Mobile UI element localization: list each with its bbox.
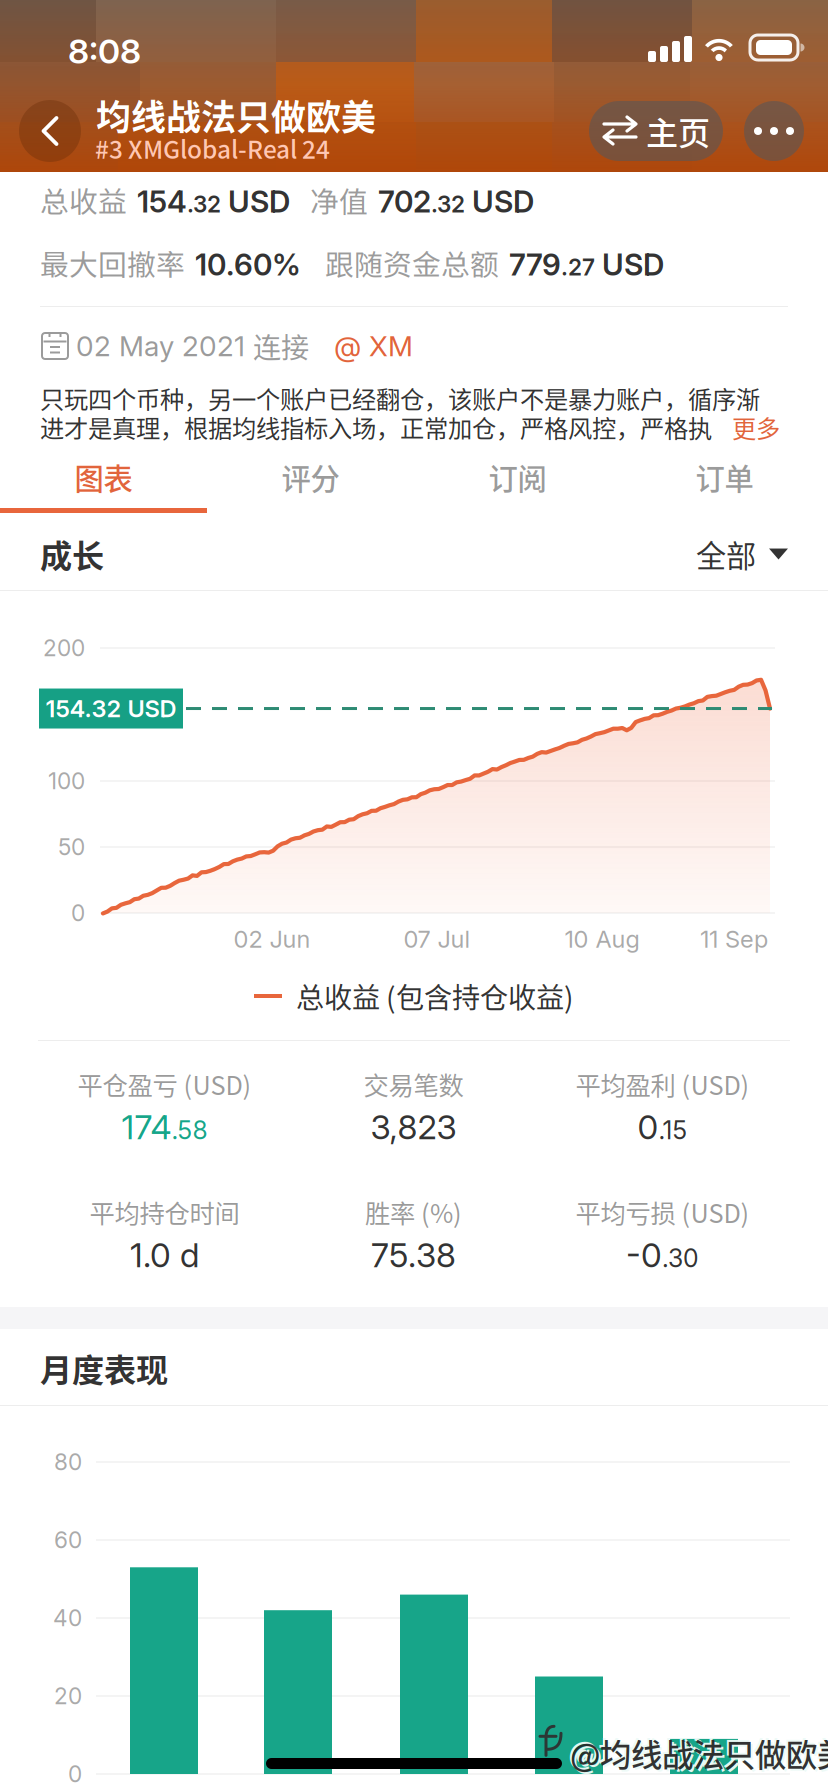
staticText: 跟随资金总额 xyxy=(325,242,499,284)
button[interactable]: 评分 xyxy=(207,444,414,510)
staticText: USD xyxy=(465,183,534,220)
staticText: 只玩四个币种，另一个账户已经翻仓，该账户不是暴力账户，循序渐 xyxy=(40,380,760,415)
staticText: .32 xyxy=(431,191,465,218)
staticText: 交易笔数 xyxy=(363,1066,463,1102)
staticText: 10.60 xyxy=(195,246,272,283)
staticText: 0 xyxy=(71,899,85,927)
button[interactable]: 订单 xyxy=(621,444,828,510)
staticText: 连接 xyxy=(253,326,309,366)
button[interactable]: 主页 xyxy=(589,101,723,161)
staticText: @ XM xyxy=(334,329,413,363)
staticText: USD xyxy=(221,183,290,220)
staticText: 主页 xyxy=(646,108,710,154)
staticText: 最大回撤率 xyxy=(40,242,185,284)
staticText: 平仓盈亏 (USD) xyxy=(77,1066,251,1102)
staticText: 平均盈利 (USD) xyxy=(575,1066,749,1102)
staticText: 40 xyxy=(53,1604,82,1632)
staticText: 75.38 xyxy=(371,1235,456,1275)
staticText: .58 xyxy=(171,1115,207,1145)
staticText: .27 xyxy=(561,254,595,281)
staticText: @均线战法只做欧美 xyxy=(568,1728,828,1774)
staticText: 174 xyxy=(121,1107,171,1147)
staticText: @均线战法只做欧美 xyxy=(572,1732,828,1778)
staticText: % xyxy=(272,246,301,283)
staticText: 02 Jun xyxy=(233,925,310,953)
staticText: 20 xyxy=(54,1682,82,1710)
staticText: 胜率 (%) xyxy=(365,1194,462,1230)
staticText: 平均亏损 (USD) xyxy=(575,1194,749,1230)
staticText: USD xyxy=(595,246,664,283)
staticText: 总收益 xyxy=(40,179,127,221)
button[interactable]: 全部 xyxy=(658,530,788,578)
staticText: 8:08 xyxy=(68,30,141,72)
staticText: -0 xyxy=(626,1235,662,1275)
staticText: 50 xyxy=(58,833,85,861)
staticText: 平均持仓时间 xyxy=(89,1194,239,1230)
staticText: 0 xyxy=(637,1107,658,1147)
staticText: #3 XMGlobal-Real 24 xyxy=(95,130,330,166)
staticText: 80 xyxy=(54,1448,82,1476)
staticText: @均线战法只做欧美 xyxy=(570,1730,828,1776)
staticText: 702 xyxy=(378,183,431,220)
staticText: 净值 xyxy=(310,179,368,221)
staticText: 154.32 USD xyxy=(45,694,176,723)
button[interactable]: 图表 xyxy=(0,444,207,510)
staticText: 月度表现 xyxy=(40,1345,168,1391)
staticText: 0 xyxy=(68,1760,82,1788)
staticText: 10 Aug xyxy=(564,925,639,953)
staticText: 全部 xyxy=(696,532,756,576)
staticText: 200 xyxy=(43,634,85,662)
staticText: 779 xyxy=(509,246,561,283)
staticText: .15 xyxy=(658,1115,687,1145)
staticText: 60 xyxy=(54,1526,82,1554)
staticText: 3,823 xyxy=(370,1107,456,1147)
staticText: 订单 xyxy=(695,456,753,498)
button[interactable]: More options xyxy=(744,101,804,161)
staticText: 订阅 xyxy=(488,456,546,498)
staticText: 11 Sep xyxy=(700,925,768,953)
staticText: 07 Jul xyxy=(403,925,470,953)
staticText: 1.0 d xyxy=(130,1235,199,1275)
button[interactable]: 订阅 xyxy=(414,444,621,510)
staticText: 均线战法只做欧美 xyxy=(96,90,376,140)
staticText: 154 xyxy=(137,183,187,220)
staticText: .30 xyxy=(662,1243,699,1273)
button[interactable]: 更多 xyxy=(724,408,780,446)
staticText: 进才是真理，根据均线指标入场，正常加仓，严格风控，严格执 xyxy=(40,409,712,444)
staticText: 成长 xyxy=(40,531,104,577)
staticText: 02 May 2021 xyxy=(68,329,253,363)
staticText: 100 xyxy=(48,767,85,795)
staticText: 总收益 (包含持仓收益) xyxy=(296,976,574,1016)
staticText: 更多 xyxy=(732,409,780,444)
staticText: 评分 xyxy=(281,456,339,498)
staticText: .32 xyxy=(187,191,221,218)
staticText: 图表 xyxy=(74,456,132,498)
button[interactable]: Back xyxy=(19,100,81,162)
